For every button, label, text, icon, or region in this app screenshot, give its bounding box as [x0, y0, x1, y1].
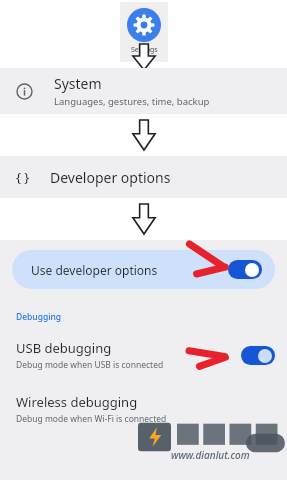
staticText: Settings: [131, 45, 158, 55]
staticText: Wireless debugging: [16, 393, 138, 411]
staticText: System: [54, 74, 102, 93]
button[interactable]: Settings: [120, 2, 168, 62]
button[interactable]: Wireless debugging: [0, 389, 287, 429]
staticText: www.dianlut.com: [171, 448, 250, 462]
staticText: Use developer options: [31, 262, 158, 278]
staticText: { }: [16, 168, 30, 186]
staticText: USB debugging: [16, 339, 112, 357]
staticText: Debug mode when Wi-Fi is connected: [16, 413, 167, 425]
staticText: Debug mode when USB is connected: [16, 359, 164, 371]
button[interactable]: System: [0, 68, 287, 114]
staticText: Developer options: [50, 168, 171, 187]
staticText: Debugging: [16, 311, 62, 323]
button[interactable]: Use developer options: [12, 250, 275, 289]
staticText: Languages, gestures, time, backup: [54, 95, 210, 108]
button[interactable]: Toggle: [241, 346, 275, 365]
button[interactable]: Toggle: [228, 260, 262, 279]
button[interactable]: USB debugging: [0, 335, 287, 375]
button[interactable]: { }: [0, 156, 287, 198]
